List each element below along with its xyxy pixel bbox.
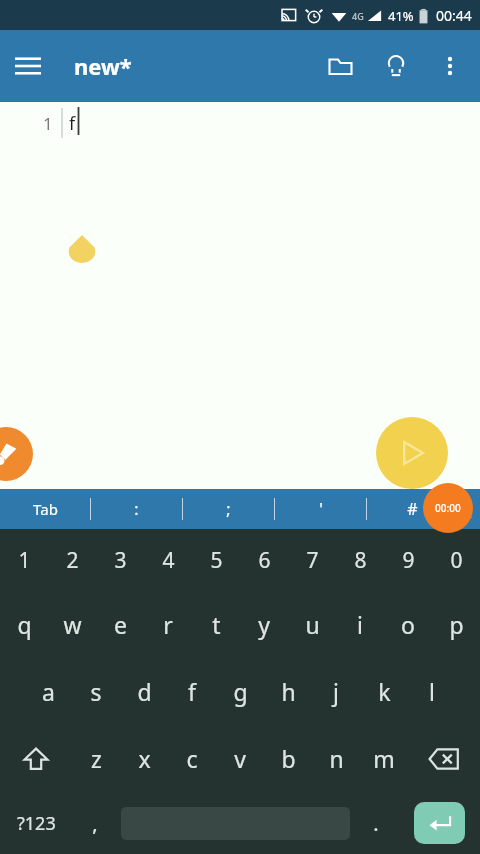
- button[interactable]: Tab: [0, 489, 90, 529]
- button[interactable]: 7: [288, 529, 336, 591]
- staticText: s: [90, 676, 102, 707]
- button[interactable]: r: [144, 591, 192, 658]
- button[interactable]: .: [353, 792, 399, 854]
- staticText: 6: [258, 546, 271, 575]
- staticText: 0: [450, 546, 463, 575]
- button[interactable]: g: [216, 658, 264, 725]
- staticText: a: [42, 676, 55, 707]
- staticText: 00:00: [435, 501, 461, 515]
- button[interactable]: More options: [424, 40, 476, 92]
- button[interactable]: f: [168, 658, 216, 725]
- staticText: m: [373, 743, 395, 774]
- button[interactable]: Open file: [312, 38, 368, 94]
- button[interactable]: 1: [0, 102, 480, 489]
- button[interactable]: Enter: [414, 802, 465, 844]
- staticText: k: [378, 676, 391, 707]
- button[interactable]: Hints: [368, 38, 424, 94]
- button[interactable]: o: [384, 591, 432, 658]
- staticText: f: [69, 111, 76, 136]
- button[interactable]: p: [432, 591, 480, 658]
- staticText: ;: [226, 498, 231, 520]
- button[interactable]: e: [96, 591, 144, 658]
- button[interactable]: m: [360, 725, 408, 792]
- button[interactable]: y: [240, 591, 288, 658]
- staticText: 5: [210, 546, 223, 575]
- button[interactable]: v: [216, 725, 264, 792]
- button[interactable]: j: [312, 658, 360, 725]
- button[interactable]: 0: [432, 529, 480, 591]
- button[interactable]: c: [168, 725, 216, 792]
- staticText: l: [429, 676, 435, 707]
- button[interactable]: ;: [183, 489, 274, 529]
- staticText: f: [188, 676, 196, 707]
- staticText: 4: [162, 546, 175, 575]
- button[interactable]: b: [264, 725, 312, 792]
- staticText: r: [163, 609, 173, 640]
- button[interactable]: n: [312, 725, 360, 792]
- staticText: 3: [114, 546, 127, 575]
- staticText: Tab: [33, 499, 58, 519]
- staticText: 1: [18, 546, 31, 575]
- staticText: y: [258, 609, 270, 640]
- staticText: :: [134, 498, 139, 520]
- button[interactable]: Space: [118, 792, 353, 854]
- staticText: (: [467, 498, 472, 520]
- staticText: u: [305, 609, 320, 640]
- button[interactable]: l: [408, 658, 456, 725]
- staticText: 2: [66, 546, 79, 575]
- button[interactable]: 8: [336, 529, 384, 591]
- button[interactable]: 9: [384, 529, 432, 591]
- button[interactable]: u: [288, 591, 336, 658]
- staticText: #: [407, 498, 418, 520]
- button[interactable]: 4: [144, 529, 192, 591]
- button[interactable]: Shift: [0, 725, 72, 792]
- staticText: o: [401, 609, 415, 640]
- button[interactable]: 3: [96, 529, 144, 591]
- button[interactable]: :: [91, 489, 182, 529]
- button[interactable]: a: [24, 658, 72, 725]
- button[interactable]: Format / theme: [0, 427, 33, 481]
- staticText: ,: [92, 810, 98, 837]
- button[interactable]: q: [0, 591, 48, 658]
- staticText: e: [114, 609, 127, 640]
- button[interactable]: (: [458, 489, 480, 529]
- button[interactable]: 5: [192, 529, 240, 591]
- button[interactable]: #: [367, 489, 458, 529]
- button[interactable]: 2: [48, 529, 96, 591]
- button[interactable]: w: [48, 591, 96, 658]
- staticText: x: [138, 743, 151, 774]
- staticText: 00:44: [436, 6, 472, 25]
- staticText: g: [233, 676, 248, 707]
- staticText: z: [91, 743, 102, 774]
- button[interactable]: ': [275, 489, 366, 529]
- staticText: d: [137, 676, 152, 707]
- staticText: n: [329, 743, 344, 774]
- button[interactable]: z: [72, 725, 120, 792]
- staticText: c: [186, 743, 198, 774]
- button[interactable]: s: [72, 658, 120, 725]
- button[interactable]: new*: [74, 51, 132, 81]
- button[interactable]: 1: [0, 529, 48, 591]
- button[interactable]: ,: [72, 792, 118, 854]
- other: Text cursor handle: [68, 235, 96, 263]
- staticText: i: [357, 609, 363, 640]
- button[interactable]: 6: [240, 529, 288, 591]
- button[interactable]: Open navigation drawer: [0, 38, 56, 94]
- button[interactable]: Run: [376, 417, 448, 489]
- button[interactable]: i: [336, 591, 384, 658]
- staticText: 4G: [352, 10, 364, 22]
- staticText: b: [281, 743, 296, 774]
- button[interactable]: t: [192, 591, 240, 658]
- button[interactable]: Timer 00:00: [423, 483, 473, 533]
- button[interactable]: d: [120, 658, 168, 725]
- button[interactable]: ?123: [0, 792, 72, 854]
- staticText: q: [17, 609, 32, 640]
- staticText: v: [234, 743, 246, 774]
- button[interactable]: h: [264, 658, 312, 725]
- button[interactable]: k: [360, 658, 408, 725]
- staticText: t: [212, 609, 221, 640]
- staticText: 9: [402, 546, 415, 575]
- button[interactable]: x: [120, 725, 168, 792]
- staticText: ?123: [17, 811, 56, 836]
- button[interactable]: Backspace: [408, 725, 480, 792]
